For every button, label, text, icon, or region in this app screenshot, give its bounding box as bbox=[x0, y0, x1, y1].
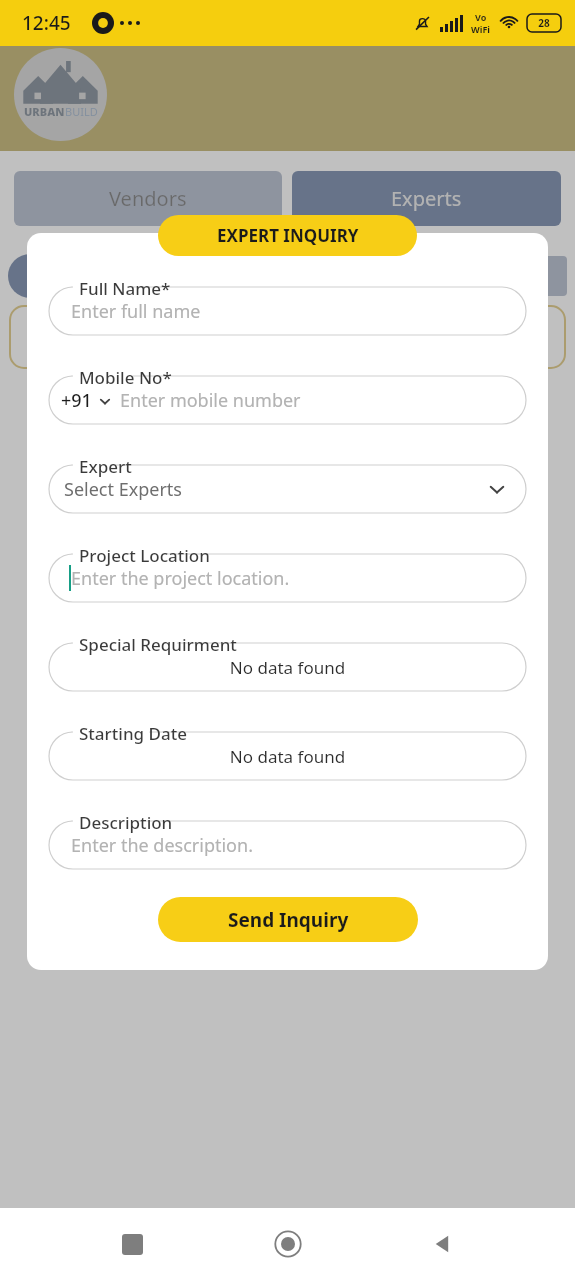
staticText: URBAN bbox=[24, 104, 65, 119]
staticText: No data found bbox=[49, 656, 526, 679]
staticText: Full Name* bbox=[79, 277, 171, 300]
button[interactable]: Back bbox=[419, 1220, 467, 1268]
other: Urban Build logo bbox=[14, 48, 107, 141]
staticText: Vendors bbox=[109, 185, 187, 212]
button[interactable]: Expert bbox=[49, 455, 526, 513]
staticText: No data found bbox=[49, 745, 526, 768]
button[interactable]: EXPERT INQUIRY bbox=[158, 215, 417, 256]
staticText: Enter mobile number bbox=[120, 388, 301, 413]
button[interactable]: Recent apps bbox=[108, 1220, 156, 1268]
staticText: 12:45 bbox=[22, 10, 71, 36]
staticText: Expert bbox=[79, 455, 132, 478]
staticText: Starting Date bbox=[79, 722, 187, 745]
staticText: Soft bbox=[493, 263, 531, 290]
button[interactable]: Experts bbox=[292, 171, 561, 226]
staticText: Enter the project location. bbox=[71, 566, 290, 591]
staticText: 28 bbox=[538, 16, 550, 30]
button[interactable]: Vendors bbox=[14, 171, 282, 226]
staticText: BUILD bbox=[65, 104, 98, 119]
staticText: Send Inquiry bbox=[228, 907, 349, 933]
staticText: Description bbox=[79, 811, 173, 834]
staticText: Mobile No* bbox=[79, 366, 172, 389]
staticText: +91 bbox=[61, 388, 92, 413]
staticText: Select Experts bbox=[64, 477, 182, 502]
button[interactable]: Home bbox=[264, 1220, 312, 1268]
staticText: EXPERT INQUIRY bbox=[217, 224, 359, 247]
button[interactable]: Send Inquiry bbox=[158, 897, 418, 942]
staticText: Vo bbox=[475, 11, 487, 23]
staticText: Project Location bbox=[79, 544, 210, 567]
staticText: Experts bbox=[391, 185, 462, 212]
staticText: Enter full name bbox=[71, 299, 201, 324]
staticText: Enter the description. bbox=[71, 833, 253, 858]
staticText: WiFi bbox=[471, 23, 491, 35]
staticText: Special Requirment bbox=[79, 633, 237, 656]
